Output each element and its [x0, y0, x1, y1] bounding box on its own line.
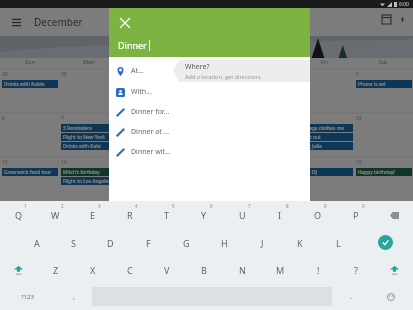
staticText: R — [127, 209, 133, 221]
staticText: C — [127, 264, 133, 276]
button[interactable]: Y — [185, 201, 223, 229]
button[interactable]: U — [223, 201, 261, 229]
button[interactable]: E — [74, 201, 111, 229]
staticText: 4 — [135, 203, 138, 209]
button[interactable]: G — [167, 229, 205, 256]
button[interactable]: H — [205, 229, 243, 256]
button[interactable]: I — [261, 201, 299, 229]
button[interactable]: Shift — [375, 256, 413, 283]
button[interactable]: Done — [357, 229, 413, 256]
staticText: Night out — [299, 134, 321, 141]
staticText: A — [34, 237, 40, 249]
button[interactable]: Menu — [8, 14, 24, 30]
staticText: X — [90, 264, 96, 276]
staticText: U — [239, 209, 246, 221]
staticText: V — [164, 264, 170, 276]
staticText: Wed — [201, 58, 213, 65]
staticText: D — [107, 237, 114, 249]
button[interactable]: Dinner for... — [109, 102, 310, 122]
staticText: 19 — [356, 159, 362, 166]
staticText: 5 — [172, 203, 175, 209]
staticText: . — [350, 292, 352, 302]
staticText: Phone is set — [358, 81, 386, 88]
staticText: Sun — [25, 58, 35, 65]
button[interactable]: ! — [299, 256, 337, 283]
staticText: Mitch's birthday — [63, 169, 100, 176]
button[interactable]: With... — [109, 82, 310, 102]
staticText: Drinks with Kate — [63, 143, 101, 150]
staticText: O — [314, 209, 322, 221]
button[interactable]: P — [337, 201, 375, 229]
button[interactable]: Backspace — [375, 201, 413, 229]
button[interactable]: At... — [109, 60, 310, 82]
button[interactable]: K — [281, 229, 319, 256]
button[interactable]: Close — [113, 11, 137, 35]
staticText: Thu — [261, 58, 271, 65]
button[interactable]: N — [223, 256, 261, 283]
button[interactable]: V — [148, 256, 185, 283]
staticText: ! — [317, 264, 320, 276]
button[interactable]: Today — [377, 10, 395, 28]
button[interactable]: S — [55, 229, 92, 256]
button[interactable]: ?123 — [0, 283, 55, 310]
button[interactable]: Z — [37, 256, 74, 283]
button[interactable]: F — [129, 229, 167, 256]
staticText: Drinks with Robin — [4, 81, 45, 88]
button[interactable]: Dinner at moms — [109, 122, 310, 142]
staticText: B — [201, 264, 207, 276]
button[interactable]: A — [18, 229, 55, 256]
staticText: ? — [354, 264, 358, 276]
button[interactable]: D — [92, 229, 129, 256]
button[interactable]: C — [111, 256, 148, 283]
staticText: 14 — [61, 159, 67, 166]
staticText: W — [51, 209, 60, 221]
staticText: 6:00 — [399, 1, 409, 8]
button[interactable]: R — [111, 201, 148, 229]
staticText: F — [146, 237, 151, 249]
staticText: Q — [15, 209, 23, 221]
button[interactable]: M — [261, 256, 299, 283]
staticText: G — [183, 237, 190, 249]
button[interactable]: X — [74, 256, 111, 283]
staticText: I — [278, 209, 282, 221]
staticText: 8 — [286, 203, 289, 209]
staticText: , — [73, 292, 75, 302]
button[interactable]: Shift — [0, 256, 37, 283]
button[interactable]: More options — [395, 12, 409, 26]
button[interactable]: J — [243, 229, 281, 256]
staticText: 7 — [248, 203, 251, 209]
staticText: 5 — [356, 71, 359, 78]
button[interactable]: Q — [0, 201, 37, 229]
staticText: 1 — [24, 203, 27, 209]
staticText: K — [297, 237, 303, 249]
button[interactable]: Emoji — [369, 283, 413, 310]
staticText: Where? — [185, 62, 210, 72]
staticText: 7 — [61, 115, 64, 122]
button[interactable]: O — [299, 201, 337, 229]
staticText: 6 — [2, 115, 5, 122]
staticText: 1 — [120, 71, 123, 78]
staticText: Y — [201, 209, 207, 221]
button[interactable]: L — [319, 229, 357, 256]
button[interactable]: B — [185, 256, 223, 283]
button[interactable]: ? — [337, 256, 375, 283]
staticText: 3 — [238, 71, 241, 78]
button[interactable]: W — [37, 201, 74, 229]
staticText: With... — [131, 87, 173, 97]
button[interactable]: T — [148, 201, 185, 229]
staticText: 30 — [61, 71, 67, 78]
staticText: Book DJ — [299, 169, 317, 176]
staticText: 9 — [324, 203, 327, 209]
staticText: M — [276, 264, 285, 276]
button[interactable]: Dinner with friends — [109, 142, 310, 162]
staticText: H — [221, 237, 228, 249]
